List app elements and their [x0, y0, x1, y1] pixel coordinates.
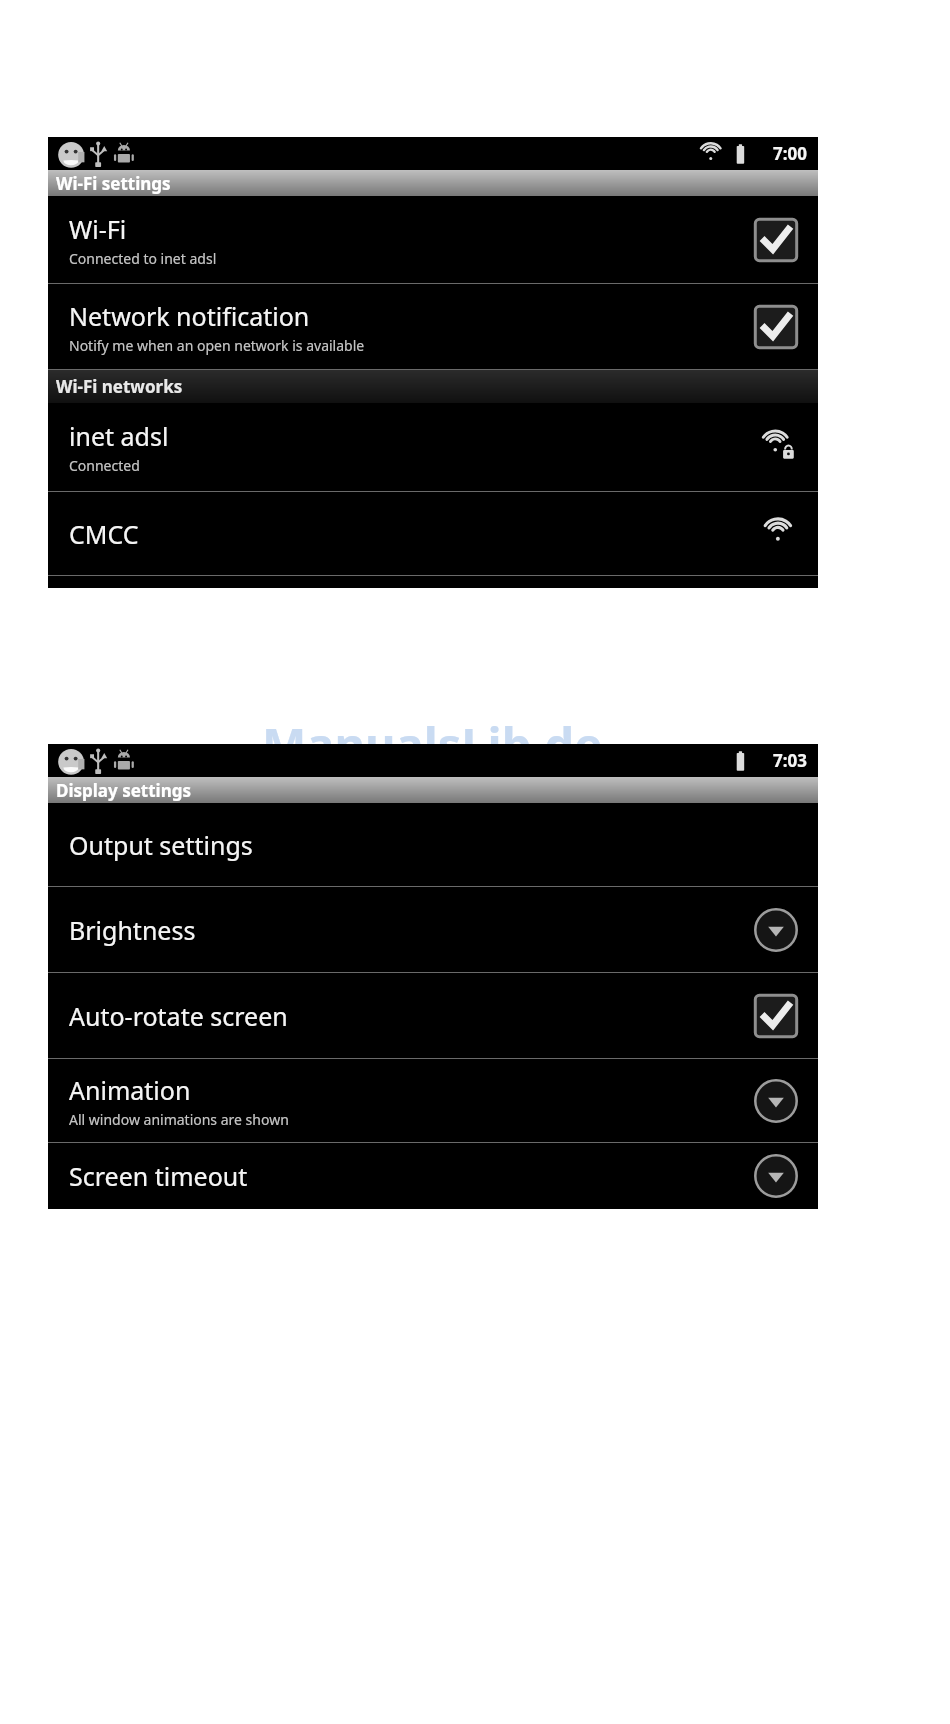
staticText: Notify me when an open network is availa… [69, 336, 365, 355]
staticText: Network notification [69, 299, 310, 333]
button[interactable]: Open network [755, 512, 799, 556]
button[interactable]: Animation [48, 1059, 818, 1142]
staticText: Wi-Fi [69, 212, 127, 246]
button[interactable]: Auto-rotate screen [48, 973, 818, 1058]
button[interactable]: Secured network [755, 425, 799, 469]
staticText: Connected [69, 456, 140, 475]
staticText: Animation [69, 1073, 191, 1107]
button[interactable]: Screen timeout [48, 1143, 818, 1209]
staticText: CMCC [69, 517, 139, 551]
staticText: inet adsl [69, 419, 169, 453]
staticText: Wi-Fi networks [56, 375, 183, 398]
button[interactable]: Screen timeout options [753, 1153, 799, 1199]
staticText: Screen timeout [69, 1159, 248, 1193]
staticText: Auto-rotate screen [69, 999, 288, 1033]
staticText: 7:00 [773, 142, 807, 165]
button[interactable]: Toggle auto-rotate screen [753, 993, 799, 1039]
button[interactable]: Network notification [48, 284, 818, 369]
button[interactable]: Wi-Fi [48, 196, 818, 283]
button[interactable]: Toggle network notification [753, 304, 799, 350]
staticText: Wi-Fi settings [56, 172, 171, 195]
button[interactable]: Animation options [753, 1078, 799, 1124]
button[interactable]: Output settings [48, 803, 818, 886]
button[interactable]: Brightness options [753, 907, 799, 953]
button[interactable]: inet adsl [48, 403, 818, 491]
staticText: Display settings [56, 779, 192, 802]
staticText: Brightness [69, 913, 196, 947]
staticText: ManualsLib.de [262, 712, 603, 776]
staticText: 7:03 [773, 749, 807, 772]
staticText: All window animations are shown [69, 1110, 289, 1129]
button[interactable]: CMCC [48, 492, 818, 575]
button[interactable]: Toggle Wi-Fi [753, 217, 799, 263]
button[interactable]: Brightness [48, 887, 818, 972]
staticText: Connected to inet adsl [69, 249, 217, 268]
staticText: Output settings [69, 828, 253, 862]
